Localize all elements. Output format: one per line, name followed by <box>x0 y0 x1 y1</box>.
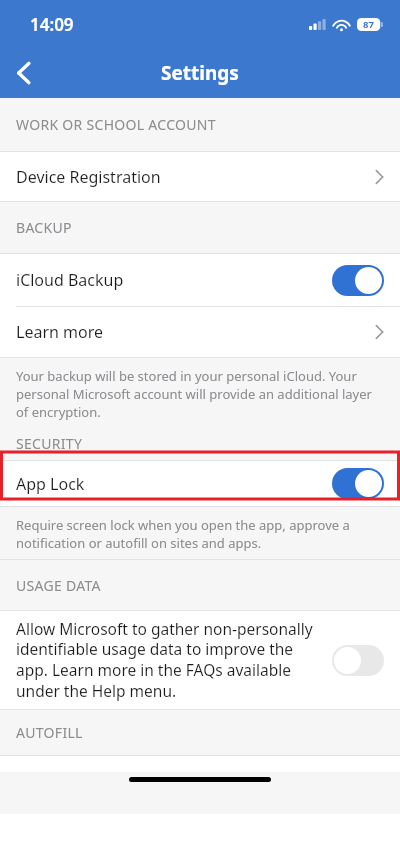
staticText: WORK OR SCHOOL ACCOUNT <box>16 115 216 134</box>
staticText: SECURITY <box>16 434 83 453</box>
button[interactable]: App Lock <box>0 461 400 506</box>
staticText: Device Registration <box>16 166 375 188</box>
staticText: Require screen lock when you open the ap… <box>16 516 384 552</box>
button[interactable]: Disabled <box>332 645 384 676</box>
staticText: BACKUP <box>16 218 72 237</box>
button[interactable]: iCloud Backup <box>0 254 400 306</box>
button[interactable]: Allow Microsoft to gather non-personally… <box>0 611 400 709</box>
button[interactable]: Learn more <box>0 307 400 357</box>
staticText: USAGE DATA <box>16 576 101 595</box>
button[interactable]: Back <box>0 50 46 96</box>
button[interactable]: Enabled <box>332 468 384 499</box>
button[interactable]: Enabled <box>332 265 384 296</box>
staticText: 87 <box>363 18 374 31</box>
staticText: Allow Microsoft to gather non-personally… <box>16 618 322 702</box>
staticText: 14:09 <box>30 13 74 36</box>
staticText: Settings <box>161 60 239 86</box>
button[interactable]: Device Registration <box>0 152 400 201</box>
staticText: Your backup will be stored in your perso… <box>16 367 384 421</box>
staticText: App Lock <box>16 473 332 495</box>
staticText: iCloud Backup <box>16 269 332 291</box>
staticText: Learn more <box>16 321 375 343</box>
staticText: AUTOFILL <box>16 723 83 742</box>
